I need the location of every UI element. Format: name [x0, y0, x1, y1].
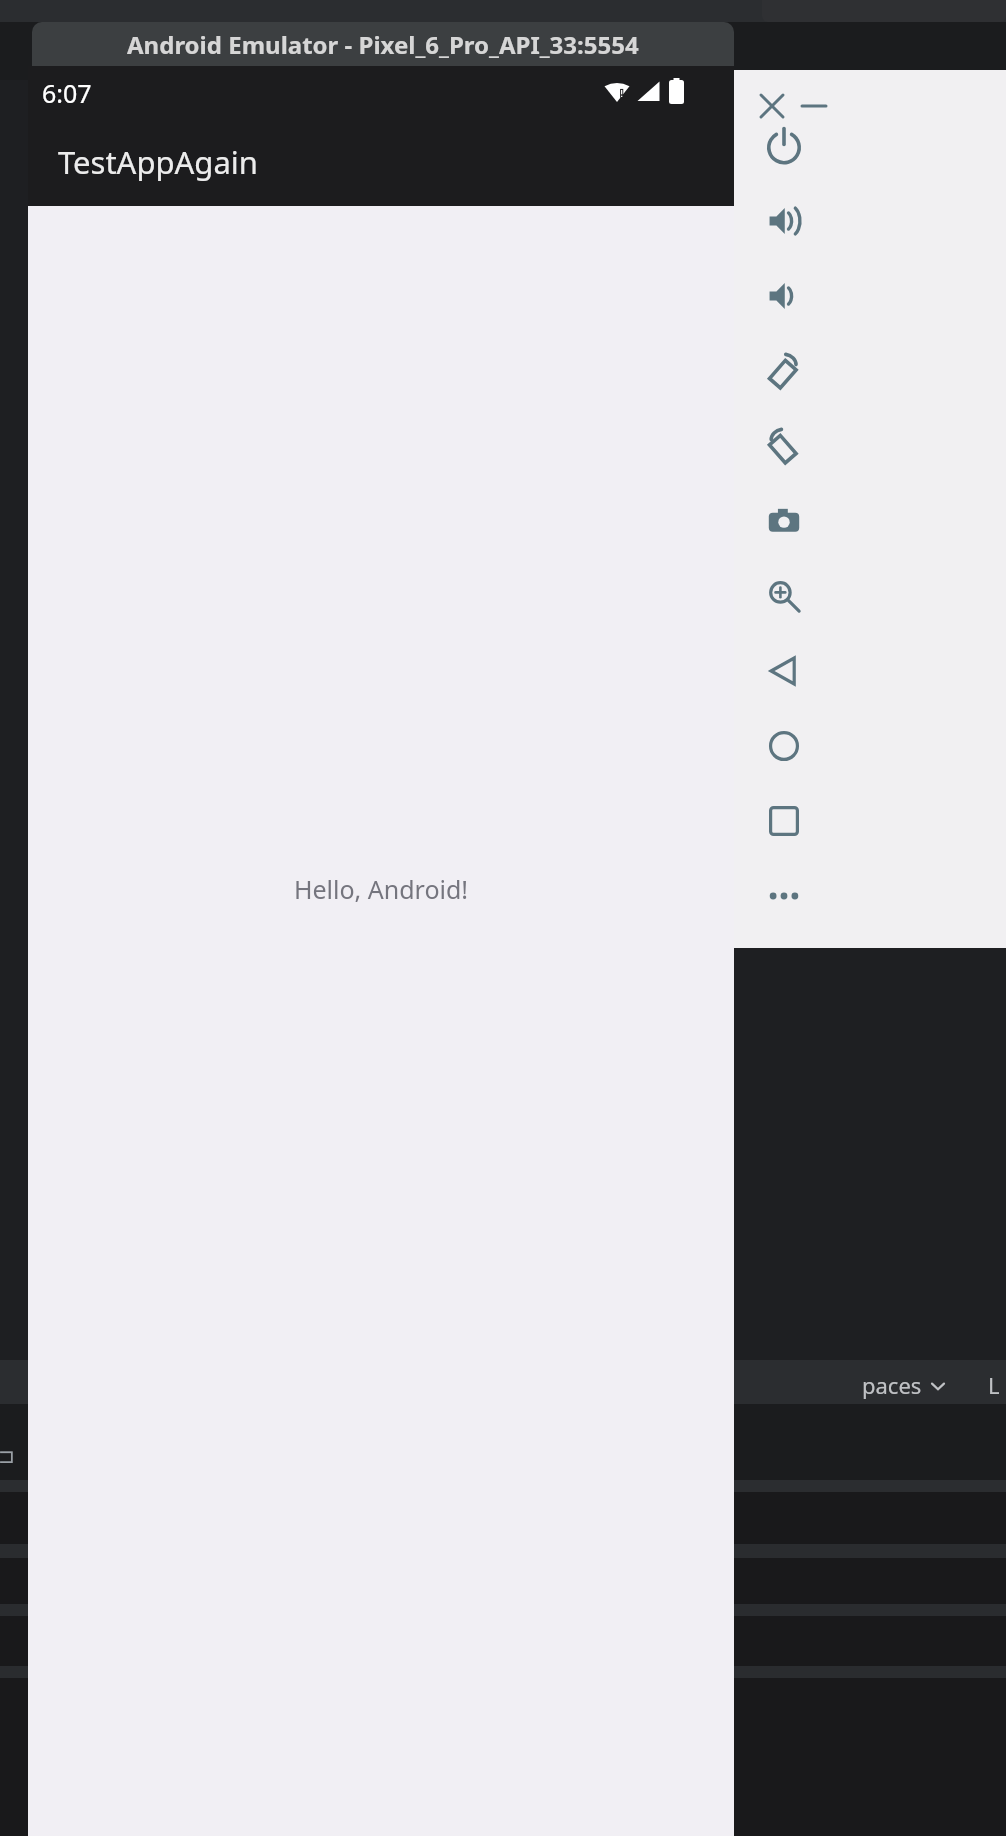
staticText: Hello, Android!	[28, 872, 734, 906]
button[interactable]: Close	[744, 78, 800, 134]
staticText: paces	[862, 1370, 922, 1400]
staticText: L	[988, 1370, 1000, 1400]
button[interactable]: Volume down	[756, 268, 812, 324]
button[interactable]: Power	[756, 118, 812, 174]
staticText: ⊐	[0, 1444, 15, 1467]
staticText: TestAppAgain	[58, 141, 258, 183]
button[interactable]: Take screenshot	[756, 493, 812, 549]
button[interactable]: Android Emulator - Pixel_6_Pro_API_33:55…	[32, 22, 734, 66]
staticText: Android Emulator - Pixel_6_Pro_API_33:55…	[127, 28, 639, 61]
button[interactable]: More	[756, 868, 812, 924]
button[interactable]: Zoom	[756, 568, 812, 624]
button[interactable]: Rotate left	[756, 343, 812, 399]
button[interactable]: Minimize	[786, 78, 842, 134]
button[interactable]: Back	[756, 643, 812, 699]
button[interactable]: Volume up	[756, 193, 812, 249]
button[interactable]: Home	[756, 718, 812, 774]
button[interactable]: Rotate right	[756, 418, 812, 474]
button[interactable]: Overview	[756, 793, 812, 849]
staticText: 6:07	[42, 76, 92, 110]
